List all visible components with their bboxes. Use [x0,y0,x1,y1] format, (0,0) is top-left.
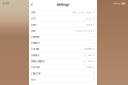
staticText: Lens [31,29,35,32]
staticText: 320 [86,17,92,20]
staticText: 12 MP [84,54,92,57]
button[interactable]: Date [29,22,97,28]
staticText: Wide 26 mm [76,29,92,32]
staticText: Camera [31,35,39,38]
button[interactable]: Info [29,10,97,16]
button[interactable]: Album [29,46,97,52]
button[interactable]: Caption [29,71,97,77]
staticText: Date [31,23,36,26]
staticText: Album [31,48,39,51]
button[interactable]: Camera [29,34,97,40]
button[interactable]: Details [29,52,97,58]
button[interactable]: Edit [29,77,97,83]
staticText: Today [86,23,92,26]
staticText: 26 mm [83,60,92,63]
button[interactable]: Back [29,3,33,6]
staticText: Focal Length [31,60,44,63]
button[interactable]: ISO [29,16,97,22]
staticText: IMG_0472.HEIC [72,11,92,14]
staticText: Details [31,54,39,57]
staticText: Added [31,66,40,69]
button[interactable]: Lens [29,28,97,34]
staticText: 9:41 [3,2,9,5]
staticText: Recents [84,48,92,51]
button[interactable]: People [29,40,97,46]
staticText: Now [87,66,92,69]
staticText: Settings [56,3,69,7]
staticText: People [31,42,39,45]
button[interactable]: Added [29,65,97,71]
staticText: ISO [31,17,36,20]
button[interactable]: Focal Length [29,58,97,65]
staticText: Caption [31,72,40,75]
staticText: Edit [31,78,36,81]
staticText: Info [31,11,35,14]
